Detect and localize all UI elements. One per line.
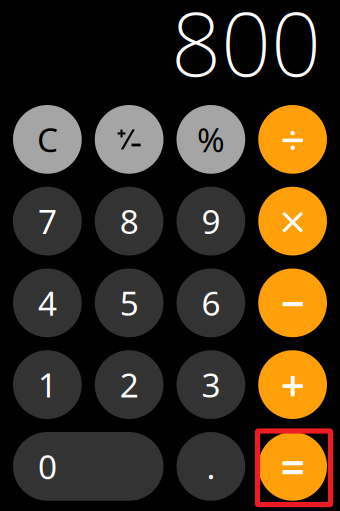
staticText: 0 [38,444,57,488]
staticText: 1 [38,362,57,407]
staticText: 6 [201,281,220,325]
button[interactable]: Minus [258,268,327,337]
button[interactable]: 4 [13,268,82,337]
button[interactable]: 5 [95,268,164,337]
staticText: % [197,117,225,161]
staticText: . [206,444,215,488]
button[interactable]: 7 [13,187,82,256]
button[interactable]: % [176,105,245,174]
staticText: 2 [120,362,139,407]
button[interactable]: 8 [95,187,164,256]
button[interactable]: Multiply [258,187,327,256]
button[interactable]: Equals [258,432,327,501]
button[interactable]: Divide [258,105,327,174]
button[interactable]: 1 [13,350,82,419]
staticText: 4 [38,281,57,325]
button[interactable]: . [176,432,245,501]
button[interactable]: 0 [13,432,163,501]
staticText: 7 [38,199,57,243]
button[interactable]: 6 [176,268,245,337]
staticText: C [37,117,58,161]
button[interactable]: 9 [176,187,245,256]
staticText: 3 [201,362,220,407]
button[interactable]: 3 [176,350,245,419]
button[interactable]: 2 [95,350,164,419]
button[interactable]: Plus Minus [95,105,164,174]
button[interactable]: C [13,105,82,174]
staticText: 800 [171,0,321,100]
button[interactable]: Plus [258,350,327,419]
staticText: 5 [120,281,139,325]
staticText: 8 [120,199,139,243]
staticText: 9 [201,199,220,243]
